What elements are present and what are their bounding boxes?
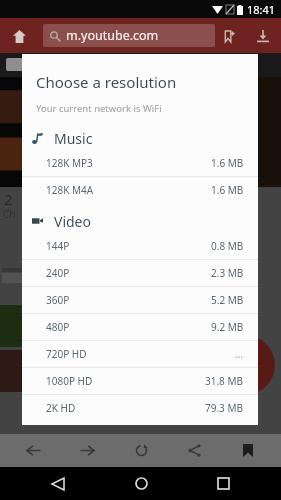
button[interactable]: 480P — [22, 314, 258, 341]
staticText: 360P — [46, 293, 70, 307]
staticText: 1.6 MB — [211, 183, 244, 197]
staticText: Ch — [3, 207, 16, 221]
button[interactable]: m.youtube.com — [43, 24, 215, 47]
button[interactable]: 128K M4A — [22, 177, 258, 203]
button[interactable]: 144P — [22, 233, 258, 260]
button[interactable]: Back — [12, 434, 54, 467]
staticText: 480P — [46, 320, 70, 334]
staticText: 2 — [4, 189, 13, 209]
staticText: Choose a resolution — [36, 72, 177, 92]
staticText: ... — [235, 347, 244, 361]
button[interactable]: Bookmarks — [227, 434, 269, 467]
button[interactable]: Reload — [120, 434, 162, 467]
staticText: 9.2 MB — [211, 320, 244, 334]
staticText: 31.8 MB — [205, 374, 244, 388]
button[interactable]: 128K MP3 — [22, 150, 258, 177]
staticText: 5.2 MB — [211, 293, 244, 307]
staticText: Video — [54, 212, 91, 231]
staticText: Music — [54, 129, 93, 148]
button[interactable]: 2K HD — [22, 395, 258, 421]
staticText: 1.6 MB — [211, 156, 244, 170]
staticText: 0.8 MB — [211, 239, 244, 253]
button[interactable]: Share — [173, 434, 215, 467]
staticText: 2K HD — [46, 401, 76, 415]
button[interactable]: Home — [116, 467, 166, 500]
button[interactable]: Back — [33, 467, 83, 500]
button[interactable]: Forward — [66, 434, 108, 467]
button[interactable]: 720P HD — [22, 341, 258, 368]
button[interactable]: Home — [8, 25, 30, 47]
staticText: 128K M4A — [46, 183, 94, 197]
staticText: 144P — [46, 239, 70, 253]
button[interactable]: 1080P HD — [22, 368, 258, 395]
button[interactable]: 360P — [22, 287, 258, 314]
staticText: Your current network is WiFi — [36, 102, 162, 115]
button[interactable]: Download — [251, 24, 275, 48]
button[interactable]: 240P — [22, 260, 258, 287]
button[interactable]: Recents — [198, 467, 248, 500]
staticText: m.youtube.com — [66, 27, 159, 44]
staticText: 720P HD — [46, 347, 87, 361]
staticText: 240P — [46, 266, 70, 280]
staticText: 1080P HD — [46, 374, 93, 388]
staticText: 18:41 — [247, 2, 276, 17]
button[interactable]: Add bookmark — [217, 24, 241, 48]
staticText: 128K MP3 — [46, 156, 93, 170]
staticText: 79.3 MB — [205, 401, 244, 415]
staticText: 2.3 MB — [211, 266, 244, 280]
